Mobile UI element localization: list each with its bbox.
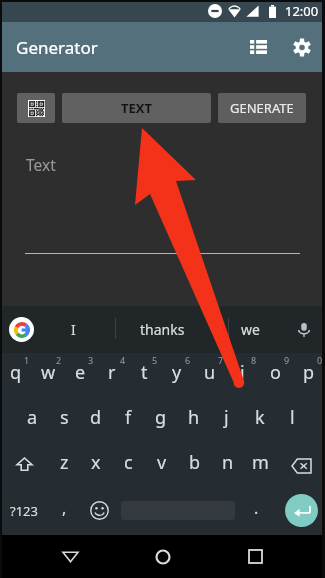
staticText: Text xyxy=(26,154,56,175)
button[interactable]: f xyxy=(112,398,144,443)
button[interactable]: Shift xyxy=(0,443,48,488)
button[interactable]: h xyxy=(177,398,210,443)
staticText: g xyxy=(155,405,167,430)
staticText: c xyxy=(124,450,133,475)
button[interactable]: l xyxy=(276,398,309,443)
staticText: , xyxy=(62,497,67,519)
button[interactable]: thanks xyxy=(116,306,209,353)
button[interactable]: s xyxy=(48,398,80,443)
staticText: 8 xyxy=(251,354,257,366)
button[interactable]: Voice input xyxy=(292,318,316,342)
staticText: 7 xyxy=(218,354,224,366)
staticText: z xyxy=(60,450,69,475)
staticText: s xyxy=(60,405,69,430)
staticText: ?123 xyxy=(10,502,38,520)
staticText: d xyxy=(90,405,102,430)
staticText: GENERATE xyxy=(230,99,294,117)
button[interactable]: x xyxy=(80,443,112,488)
staticText: i xyxy=(240,360,245,385)
staticText: 3 xyxy=(88,354,94,366)
staticText: a xyxy=(27,405,38,430)
button[interactable]: c xyxy=(112,443,145,488)
button[interactable]: Recents xyxy=(232,535,278,578)
staticText: k xyxy=(255,405,265,430)
staticText: w xyxy=(41,360,56,385)
button[interactable]: q xyxy=(0,353,32,398)
button[interactable]: g xyxy=(144,398,177,443)
button[interactable]: TEXT xyxy=(62,93,211,123)
button[interactable]: i xyxy=(226,353,259,398)
staticText: 1 xyxy=(24,354,30,366)
staticText: we xyxy=(241,320,260,339)
staticText: . xyxy=(254,497,259,519)
button[interactable]: p xyxy=(292,353,325,398)
button[interactable]: Settings xyxy=(280,25,324,69)
button[interactable]: u xyxy=(193,353,226,398)
button[interactable]: we xyxy=(229,306,271,353)
staticText: l xyxy=(290,405,295,430)
staticText: t xyxy=(141,360,148,385)
button[interactable]: Backspace xyxy=(277,443,325,488)
button[interactable]: Back xyxy=(47,535,93,578)
button[interactable]: . xyxy=(235,488,277,533)
button[interactable]: Enter xyxy=(277,488,325,533)
staticText: e xyxy=(75,360,86,385)
staticText: thanks xyxy=(140,320,185,339)
button[interactable]: e xyxy=(64,353,96,398)
staticText: x xyxy=(91,450,101,475)
staticText: 4 xyxy=(120,354,126,366)
button[interactable]: Google xyxy=(9,317,34,342)
button[interactable]: j xyxy=(210,398,243,443)
button[interactable]: w xyxy=(32,353,64,398)
staticText: 12:00 xyxy=(285,2,319,20)
staticText: 9 xyxy=(284,354,290,366)
staticText: j xyxy=(224,405,229,430)
button[interactable]: k xyxy=(243,398,276,443)
staticText: r xyxy=(108,360,116,385)
button[interactable]: v xyxy=(145,443,178,488)
staticText: f xyxy=(125,405,132,430)
button[interactable]: d xyxy=(80,398,112,443)
button[interactable]: I xyxy=(38,306,108,353)
button[interactable]: GENERATE xyxy=(218,93,306,123)
button[interactable]: Home xyxy=(140,535,186,578)
staticText: I xyxy=(71,320,76,339)
button[interactable]: r xyxy=(96,353,128,398)
staticText: 2 xyxy=(56,354,62,366)
button[interactable]: b xyxy=(178,443,211,488)
staticText: h xyxy=(188,405,200,430)
staticText: 6 xyxy=(185,354,191,366)
button[interactable]: , xyxy=(48,488,80,533)
staticText: Generator xyxy=(16,36,98,59)
staticText: u xyxy=(204,360,216,385)
staticText: p xyxy=(303,360,315,385)
button[interactable]: History list xyxy=(236,25,280,69)
staticText: m xyxy=(252,450,269,475)
staticText: o xyxy=(270,360,281,385)
button[interactable]: n xyxy=(211,443,244,488)
button[interactable]: o xyxy=(259,353,292,398)
staticText: v xyxy=(157,450,167,475)
staticText: n xyxy=(222,450,234,475)
staticText: 0 xyxy=(317,354,323,366)
staticText: y xyxy=(172,360,182,385)
staticText: q xyxy=(10,360,22,385)
staticText: 5 xyxy=(152,354,158,366)
button[interactable]: t xyxy=(128,353,160,398)
button[interactable]: y xyxy=(160,353,193,398)
staticText: TEXT xyxy=(121,99,152,117)
staticText: b xyxy=(189,450,201,475)
button[interactable]: ?123 xyxy=(0,488,48,533)
button[interactable]: z xyxy=(48,443,80,488)
button[interactable]: a xyxy=(16,398,48,443)
button[interactable]: Emoji xyxy=(80,488,119,533)
button[interactable]: m xyxy=(244,443,277,488)
button[interactable]: Scan QR code xyxy=(17,93,55,123)
